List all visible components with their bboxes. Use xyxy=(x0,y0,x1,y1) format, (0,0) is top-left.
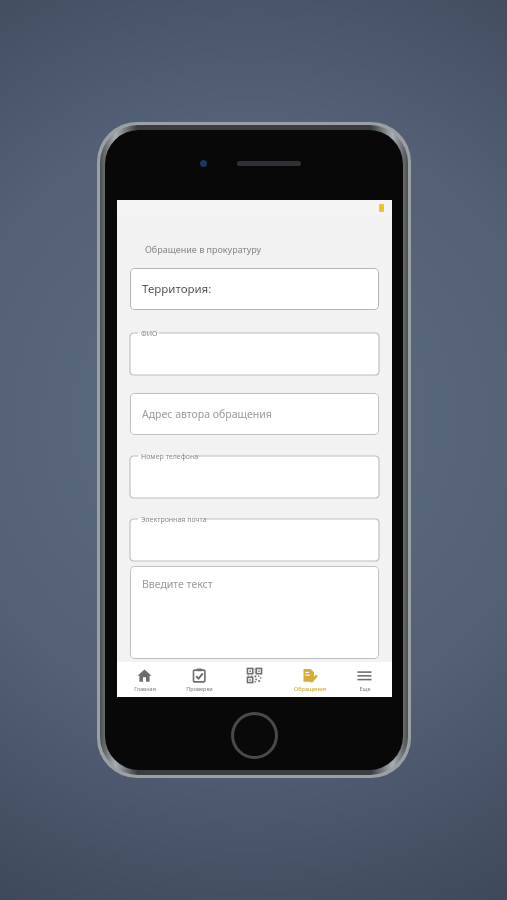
staticText: Главная xyxy=(134,685,156,692)
staticText: Обращения xyxy=(294,685,326,692)
button[interactable]: QR-код сканер xyxy=(227,662,282,697)
button[interactable]: Номер телефона xyxy=(130,451,379,498)
button[interactable]: Еще xyxy=(337,662,392,697)
button[interactable]: Электронная почта xyxy=(130,514,379,561)
staticText: ФИО xyxy=(141,329,158,339)
button[interactable]: Введите текст xyxy=(130,566,379,659)
staticText: Электронная почта xyxy=(141,515,207,525)
button[interactable]: Адрес автора обращения xyxy=(130,393,379,435)
staticText: Адрес автора обращения xyxy=(142,407,272,421)
button[interactable]: Территория: xyxy=(130,268,379,310)
button[interactable]: Главная xyxy=(117,662,172,697)
staticText: Еще xyxy=(359,685,371,692)
staticText: Территория: xyxy=(142,281,212,297)
staticText: Номер телефона xyxy=(141,452,199,462)
button[interactable]: ФИО xyxy=(130,328,379,375)
button[interactable]: Проверки xyxy=(172,662,227,697)
staticText: Введите текст xyxy=(142,577,213,591)
staticText: Обращение в прокуратуру xyxy=(145,243,262,255)
button[interactable]: Обращения xyxy=(282,662,337,697)
staticText: Проверки xyxy=(186,685,213,692)
